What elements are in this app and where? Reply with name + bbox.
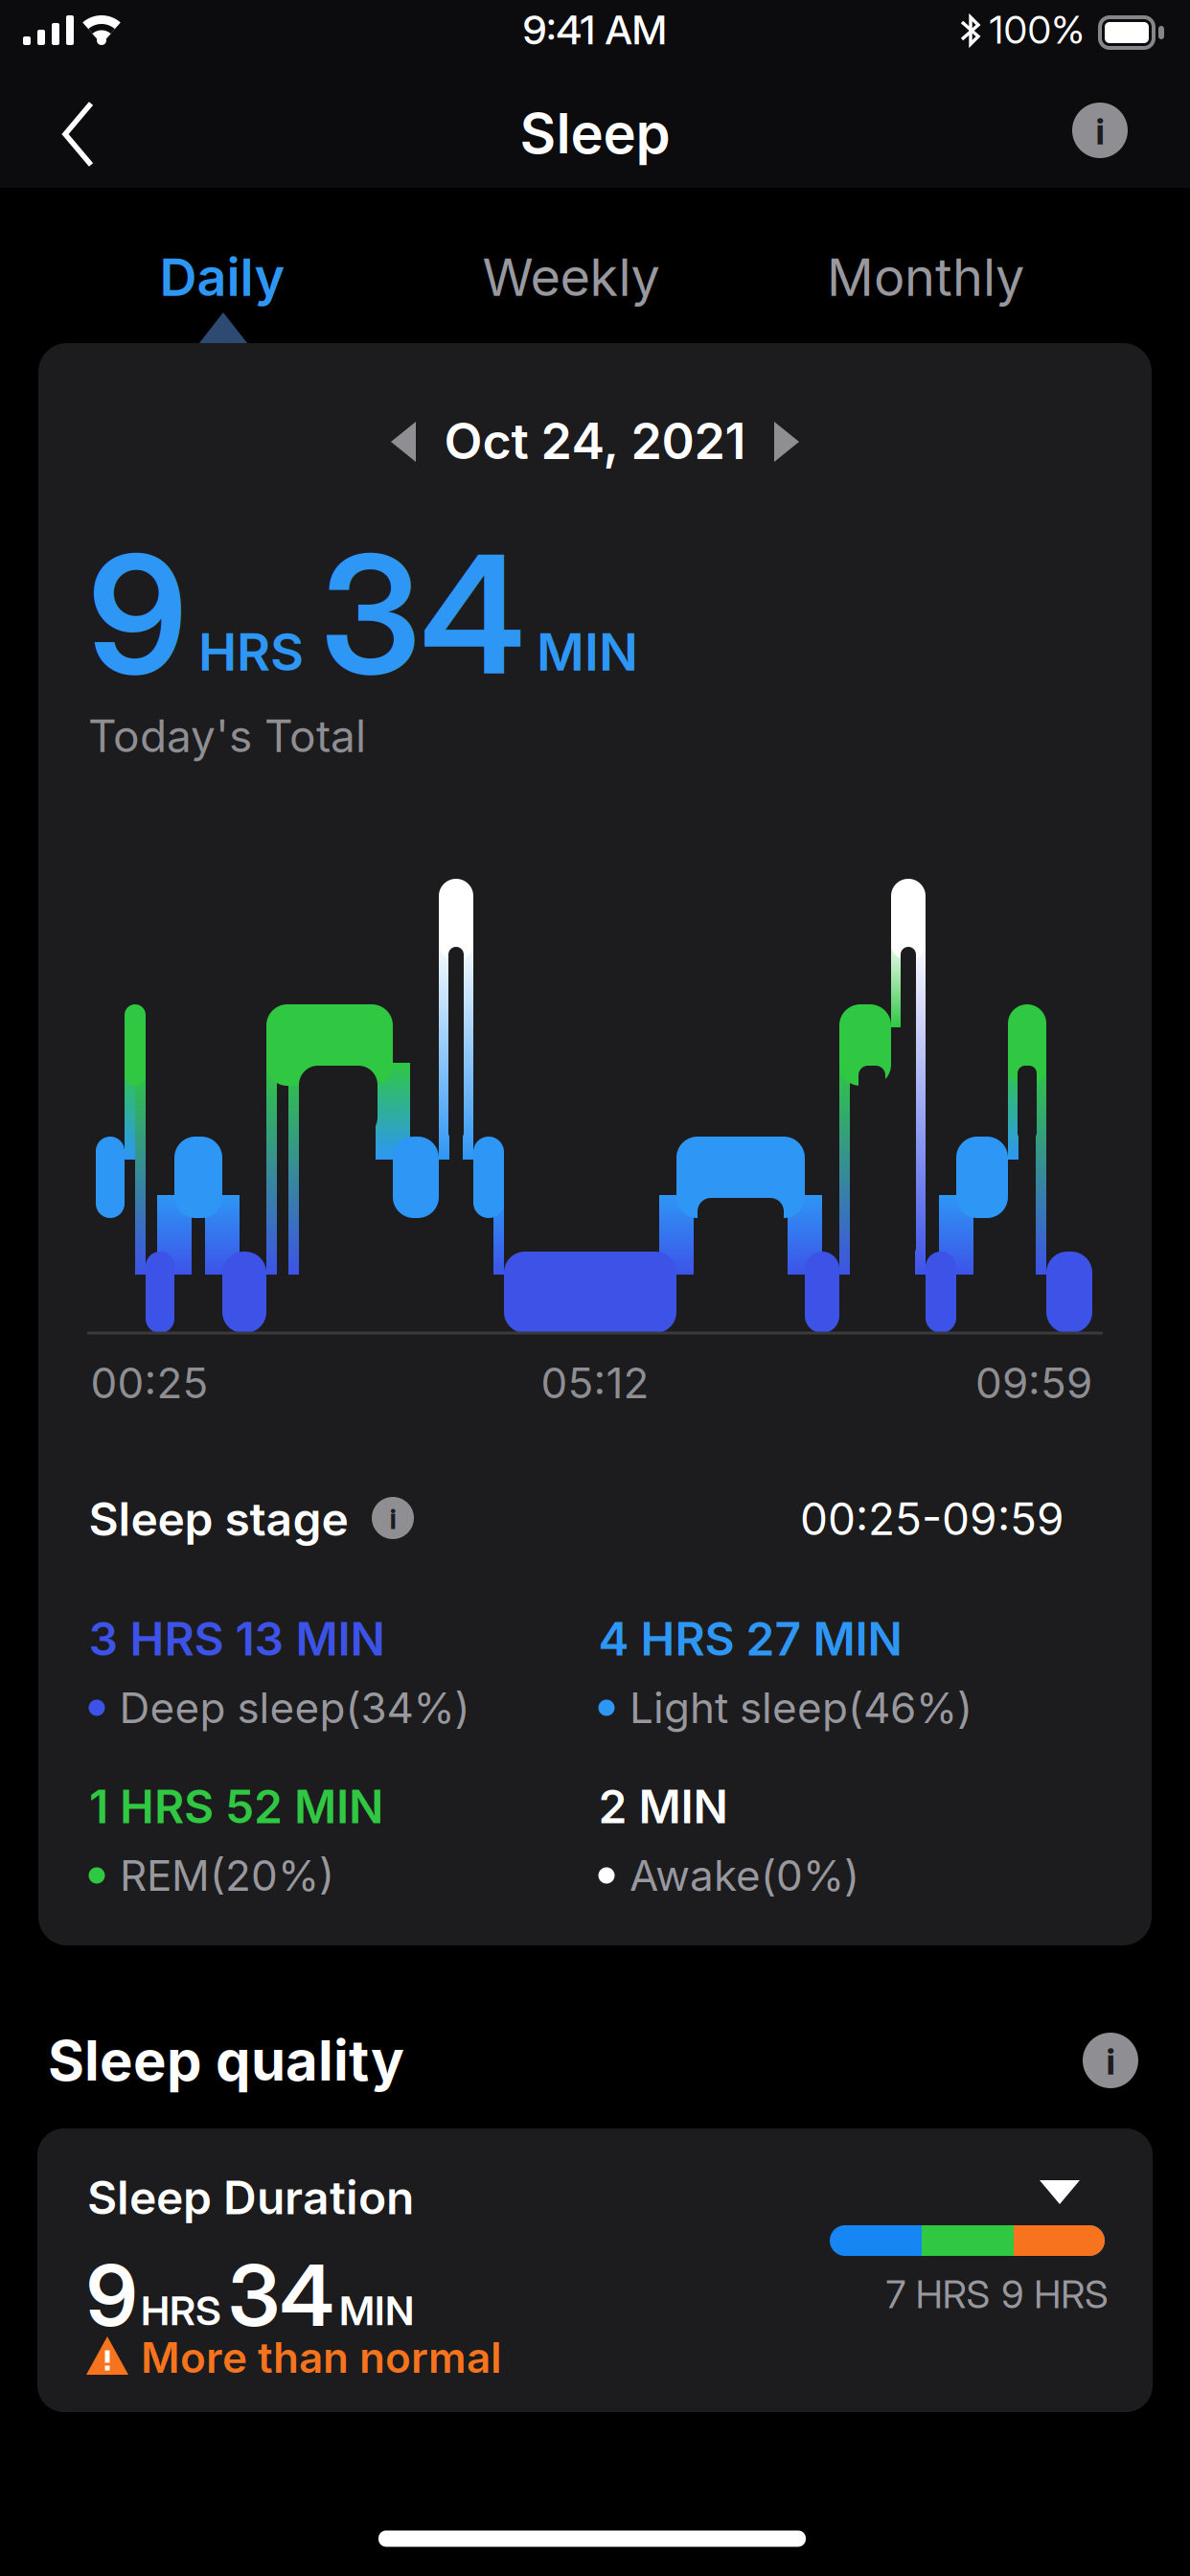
staticText: i [389, 1502, 396, 1536]
staticText: 7 HRS [886, 2271, 990, 2317]
staticText: 1 HRS 52 MIN [89, 1779, 383, 1834]
staticText: 9 [88, 516, 187, 713]
button[interactable]: i [1083, 2033, 1138, 2088]
button[interactable]: Monthly [827, 246, 1024, 308]
staticText: Deep sleep(34%) [119, 1682, 470, 1733]
button[interactable] [385, 420, 427, 464]
staticText: Sleep [520, 100, 670, 167]
staticText: MIN [339, 2286, 414, 2335]
staticText: Awake(0%) [629, 1850, 859, 1901]
staticText: Sleep quality [48, 2027, 404, 2094]
staticText: More than normal [141, 2332, 502, 2383]
staticText: 05:12 [541, 1357, 649, 1408]
button[interactable]: Daily [160, 246, 285, 308]
staticText: 00:25 [91, 1357, 208, 1408]
button[interactable]: Sleep Duration [37, 2128, 1153, 2412]
button[interactable]: Weekly [482, 246, 660, 308]
staticText: Oct 24, 2021 [444, 411, 746, 471]
button[interactable]: i [372, 1497, 414, 1539]
staticText: Daily [160, 246, 285, 308]
staticText: HRS [198, 620, 304, 683]
button[interactable] [763, 420, 805, 464]
staticText: 9:41 AM [523, 5, 667, 54]
staticText: i [1096, 109, 1104, 153]
staticText: 9 [86, 2244, 137, 2346]
staticText: MIN [537, 620, 638, 683]
staticText: 34 [320, 516, 525, 713]
staticText: 4 HRS 27 MIN [598, 1611, 902, 1667]
staticText: 2 MIN [598, 1779, 728, 1834]
staticText: 3 HRS 13 MIN [89, 1611, 385, 1667]
staticText: REM(20%) [120, 1850, 334, 1901]
staticText: Today's Total [88, 709, 366, 763]
staticText: 34 [228, 2244, 334, 2346]
staticText: i [1106, 2040, 1115, 2083]
button[interactable]: i [1071, 102, 1129, 159]
staticText: 9 HRS [1001, 2271, 1109, 2317]
staticText: Sleep stage [89, 1491, 348, 1547]
staticText: Light sleep(46%) [629, 1682, 973, 1733]
staticText: 100% [989, 7, 1084, 53]
staticText: Weekly [482, 246, 660, 308]
staticText: 00:25-09:59 [800, 1492, 1064, 1546]
staticText: HRS [141, 2286, 221, 2335]
button[interactable] [38, 96, 125, 172]
staticText: Monthly [827, 246, 1024, 308]
staticText: Sleep Duration [87, 2170, 414, 2225]
staticText: 09:59 [975, 1357, 1092, 1408]
